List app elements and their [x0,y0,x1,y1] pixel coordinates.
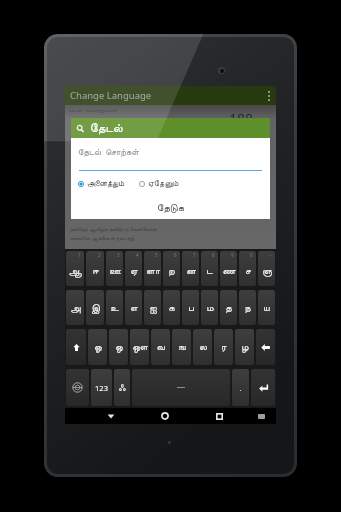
staticText: 1 [78,252,81,258]
staticText: 7 [193,252,196,258]
staticText: 8 [212,252,215,258]
staticText: இ [91,303,100,313]
staticText: 3 [117,252,120,258]
staticText: ~ [269,252,272,258]
staticText: உ [110,303,119,313]
staticText: Change Language [70,89,152,102]
button[interactable]: ர [214,329,233,365]
button[interactable]: உ [106,290,123,325]
staticText: ஈ [92,266,99,276]
staticText: ச [245,266,251,276]
button[interactable]: 7 [182,251,199,286]
button[interactable]: Back [83,408,138,424]
button[interactable]: எ [125,290,142,325]
staticText: அனைத்தும் [87,180,125,188]
staticText: அ [70,303,81,313]
staticText: ம [206,303,214,313]
staticText: 188 [229,109,254,128]
button[interactable]: 9 [220,251,237,286]
staticText: 6 [174,252,177,258]
button[interactable]: 6 [163,251,180,286]
button[interactable]: . [232,369,249,406]
button[interactable]: அ [66,290,84,325]
staticText: . [239,383,242,393]
staticText: ன [186,266,196,276]
staticText: 9 [231,252,234,258]
staticText: ஔ [132,342,148,352]
staticText: த [225,303,232,313]
staticText: ஊ [109,266,121,276]
staticText: ப [188,303,194,313]
staticText: ல [199,342,207,352]
button[interactable]: ஓ [88,329,107,365]
staticText: ங [178,342,186,352]
staticText: ஞ [262,266,272,276]
staticText: 2 [98,252,101,258]
staticText: பாடல்: காமாத்துப்பால் [69,107,118,114]
button[interactable]: ~ [258,251,275,286]
button[interactable]: 1 [66,251,84,286]
button[interactable]: த [220,290,237,325]
staticText: 5 [155,252,158,258]
button[interactable]: Recents [192,408,246,424]
staticText: 0 [250,252,253,258]
button[interactable]: ம [201,290,218,325]
button[interactable]: Enter [251,369,275,406]
button[interactable]: Home [138,408,192,424]
button[interactable]: வ [151,329,170,365]
button[interactable]: Keyboard [246,408,276,424]
button[interactable]: தேடல் [71,118,270,138]
button[interactable]: தேடுக [71,200,270,216]
staticText: ஓ [94,342,102,352]
button[interactable]: Shift [66,329,86,365]
button[interactable]: ய [258,290,275,325]
staticText: ழ [241,342,249,352]
staticText: ஐ [149,303,157,313]
staticText: ஆ [68,266,82,276]
button[interactable]: ந [239,290,256,325]
staticText: க [168,303,175,313]
staticText: ர [221,342,227,352]
staticText: ஒ [115,342,123,352]
button[interactable]: 4 [125,251,142,286]
staticText: ஏ [130,266,138,276]
button[interactable]: 3 [106,251,123,286]
staticText: தேடல் [90,122,123,134]
button[interactable]: Change Language [65,86,276,105]
button[interactable]: ஃ [114,369,130,406]
button[interactable]: 5 [144,251,161,286]
button[interactable]: ங [172,329,191,365]
staticText: ஏதேனும் [148,180,179,188]
button[interactable]: அனைத்தும் [78,180,125,188]
staticText: தனிநெர் ஆயிலும் தனிநீரார் வெள்ளோன் கனவர… [70,226,158,242]
staticText: வ [156,342,165,352]
staticText: தேடுக [157,203,185,213]
button[interactable]: Change keyboard [66,369,89,406]
button[interactable]: ல [193,329,212,365]
button[interactable]: 8 [201,251,218,286]
button[interactable]: ஔ [130,329,149,365]
button[interactable]: ஒ [109,329,128,365]
button[interactable]: 2 [86,251,104,286]
staticText: எ [130,303,138,313]
button[interactable]: ஏதேனும் [139,180,179,188]
staticText: ஃ [118,383,126,393]
button[interactable]: Space [132,369,230,406]
staticText: ந [244,303,251,313]
button[interactable]: ப [182,290,199,325]
staticText: ண [222,266,236,276]
button[interactable]: 0 [239,251,256,286]
staticText: ற [168,266,175,276]
staticText: 123 [95,383,108,393]
staticText: ளா [146,266,160,276]
button[interactable]: ழ [235,329,254,365]
button[interactable]: Backspace [256,329,275,365]
staticText: ட [206,266,213,276]
button[interactable]: க [163,290,180,325]
staticText: 4 [136,252,139,258]
staticText: ய [263,303,270,313]
button[interactable]: ஐ [144,290,161,325]
button[interactable]: இ [86,290,104,325]
staticText: தேடல் சொற்கள் [78,146,139,158]
button[interactable]: 123 [91,369,112,406]
